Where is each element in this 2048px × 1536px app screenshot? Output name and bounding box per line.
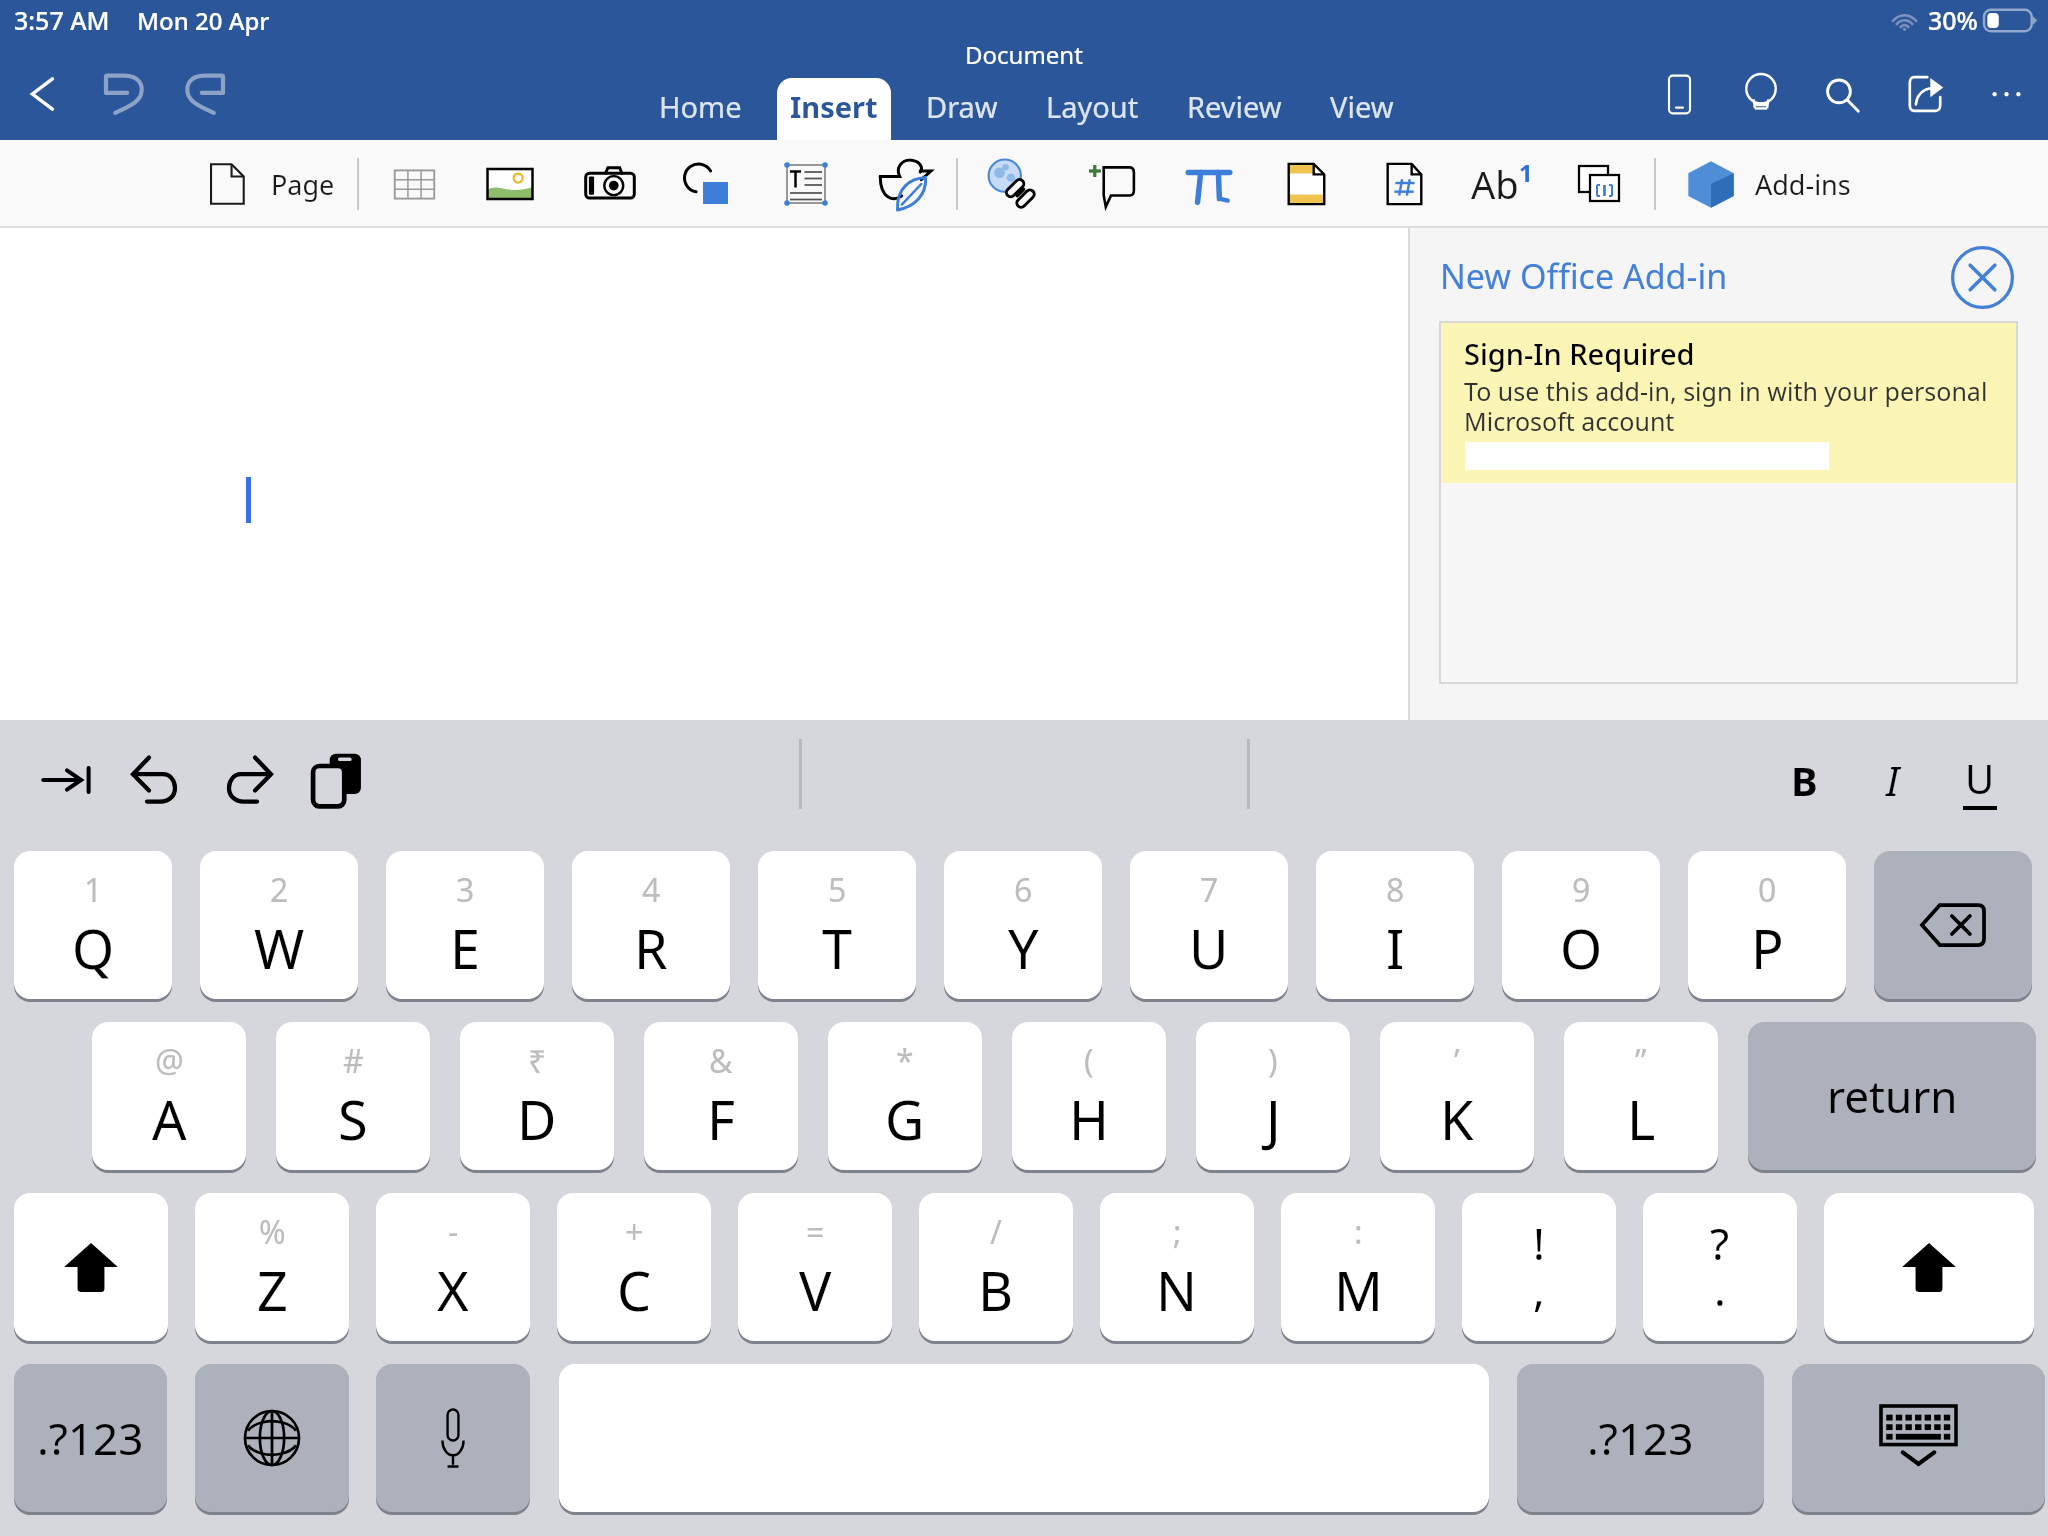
staticText: Home: [659, 87, 742, 126]
button[interactable]: N: [1100, 1193, 1254, 1341]
staticText: @: [155, 1039, 184, 1083]
button[interactable]: return: [1748, 1022, 2036, 1170]
button[interactable]: Tab: [22, 735, 112, 825]
button[interactable]: Word art: [1458, 140, 1546, 228]
button[interactable]: D: [460, 1022, 614, 1170]
staticText: Sign-In Required: [1464, 334, 1695, 373]
button[interactable]: Phone layout: [1639, 54, 1719, 134]
button[interactable]: Q: [14, 851, 172, 999]
staticText: U: [1189, 911, 1229, 985]
button[interactable]: Underline: [1936, 735, 2024, 825]
button[interactable]: Z: [195, 1193, 349, 1341]
staticText: R: [634, 911, 668, 985]
button[interactable]: B: [919, 1193, 1073, 1341]
button[interactable]: Next keyboard: [195, 1364, 349, 1512]
staticText: E: [450, 911, 481, 985]
button[interactable]: F: [644, 1022, 798, 1170]
button[interactable]: Shift: [14, 1193, 168, 1341]
button[interactable]: Text box: [762, 140, 850, 228]
button[interactable]: Search: [1802, 54, 1882, 134]
button[interactable]: T: [758, 851, 916, 999]
button[interactable]: Shapes: [663, 140, 751, 228]
button[interactable]: O: [1502, 851, 1660, 999]
button[interactable]: Page: [208, 140, 335, 228]
staticText: K: [1440, 1082, 1474, 1156]
button[interactable]: K: [1380, 1022, 1534, 1170]
button[interactable]: Home: [635, 78, 766, 140]
staticText: 9: [1572, 868, 1591, 912]
staticText: D: [517, 1082, 557, 1156]
staticText: =: [806, 1210, 825, 1254]
button[interactable]: V: [738, 1193, 892, 1341]
button[interactable]: Hide keyboard: [1792, 1364, 2045, 1512]
button[interactable]: Close: [1946, 241, 2018, 313]
button[interactable]: Share: [1885, 54, 1965, 134]
button[interactable]: C: [557, 1193, 711, 1341]
button[interactable]: More: [1966, 54, 2046, 134]
button[interactable]: Redo: [202, 735, 292, 825]
button[interactable]: Paste: [292, 735, 382, 825]
button[interactable]: Undo: [112, 735, 202, 825]
staticText: 30%: [1928, 3, 1978, 37]
button[interactable]: Camera: [566, 140, 654, 228]
button[interactable]: Y: [944, 851, 1102, 999]
button[interactable]: G: [828, 1022, 982, 1170]
button[interactable]: Footer: [1262, 140, 1350, 228]
button[interactable]: H: [1012, 1022, 1166, 1170]
button[interactable]: E: [386, 851, 544, 999]
button[interactable]: Cross reference: [1557, 140, 1645, 228]
button[interactable]: Comment: [1067, 140, 1155, 228]
button[interactable]: Exclamation comma: [1462, 1193, 1616, 1341]
button[interactable]: Icons: [860, 140, 948, 228]
button[interactable]: Insert: [777, 78, 891, 140]
button[interactable]: .?123: [14, 1364, 167, 1512]
button[interactable]: .?123 right: [1517, 1364, 1764, 1512]
button[interactable]: W: [200, 851, 358, 999]
button[interactable]: Add-ins: [1684, 140, 1851, 228]
button[interactable]: L: [1564, 1022, 1718, 1170]
button[interactable]: Equation: [1165, 140, 1253, 228]
button[interactable]: Layout: [1022, 78, 1163, 140]
button[interactable]: Italic: [1848, 735, 1936, 825]
staticText: 1: [84, 868, 103, 912]
staticText: return: [1827, 1066, 1958, 1126]
button[interactable]: Review: [1163, 78, 1306, 140]
staticText: Review: [1187, 87, 1282, 126]
staticText: Insert: [790, 87, 878, 126]
staticText: T: [822, 911, 853, 985]
button[interactable]: Table: [370, 140, 458, 228]
staticText: U: [1965, 751, 1995, 805]
button[interactable]: Link: [968, 140, 1056, 228]
button[interactable]: X: [376, 1193, 530, 1341]
button[interactable]: Tell me: [1721, 54, 1801, 134]
button[interactable]: P: [1688, 851, 1846, 999]
button[interactable]: Draw: [902, 78, 1022, 140]
button[interactable]: Backspace: [1874, 851, 2032, 999]
button[interactable]: I: [1316, 851, 1474, 999]
button[interactable]: Dictate: [376, 1364, 530, 1512]
button[interactable]: Redo: [171, 58, 239, 130]
button[interactable]: S: [276, 1022, 430, 1170]
staticText: *: [896, 1039, 914, 1083]
staticText: %: [259, 1210, 286, 1254]
button[interactable]: View: [1306, 78, 1418, 140]
staticText: Layout: [1046, 87, 1139, 126]
button[interactable]: M: [1281, 1193, 1435, 1341]
button[interactable]: Bold: [1760, 735, 1848, 825]
button[interactable]: Back: [8, 58, 76, 130]
staticText: N: [1156, 1253, 1198, 1327]
button[interactable]: R: [572, 851, 730, 999]
button[interactable]: Shift right: [1824, 1193, 2034, 1341]
button[interactable]: Page number: [1360, 140, 1448, 228]
button[interactable]: Pictures: [466, 140, 554, 228]
button[interactable]: Question period: [1643, 1193, 1797, 1341]
button[interactable]: U: [1130, 851, 1288, 999]
button[interactable]: J: [1196, 1022, 1350, 1170]
staticText: (: [1084, 1039, 1094, 1083]
button[interactable]: Undo: [90, 58, 158, 130]
button[interactable]: A: [92, 1022, 246, 1170]
staticText: #: [343, 1039, 364, 1083]
staticText: ,: [1533, 1259, 1545, 1319]
staticText: .?123: [37, 1408, 144, 1468]
